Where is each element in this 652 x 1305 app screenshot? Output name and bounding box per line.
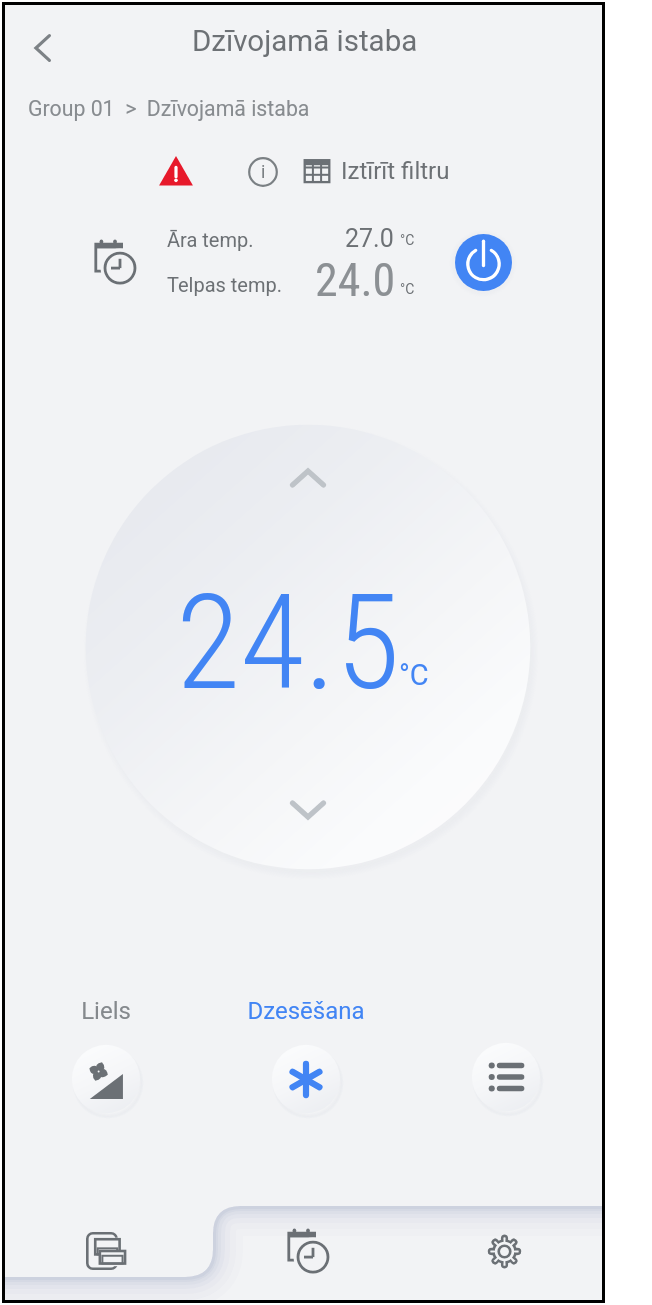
button[interactable]: More options [406, 997, 602, 1113]
staticText: Liels [81, 997, 131, 1025]
staticText: Āra temp. [167, 228, 254, 251]
staticText: °C [400, 281, 415, 297]
button[interactable]: Information [248, 157, 278, 187]
staticText: 24.0 [315, 253, 396, 307]
staticText: °C [399, 658, 429, 692]
staticText: Group 01 > Dzīvojamā istaba [28, 96, 310, 121]
button[interactable]: Warning [158, 153, 194, 189]
button[interactable]: Back [17, 21, 71, 75]
button[interactable]: Iztīrīt filtru [302, 156, 450, 186]
staticText: Dzesēšana [247, 997, 365, 1025]
button[interactable]: Settings [406, 1204, 602, 1300]
staticText: i [261, 161, 266, 182]
staticText: °C [400, 232, 415, 248]
button[interactable]: Schedule [87, 234, 143, 290]
button[interactable]: Mode [206, 997, 406, 1115]
staticText: Telpas temp. [167, 273, 283, 296]
button[interactable]: Devices [5, 1204, 208, 1300]
staticText: Iztīrīt filtru [341, 157, 450, 185]
staticText: Dzīvojamā istaba [192, 24, 418, 59]
button[interactable]: Fan speed [6, 997, 206, 1115]
button[interactable]: Decrease temperature [263, 765, 353, 855]
button[interactable]: Power [455, 234, 512, 291]
staticText: 24.5 [176, 566, 400, 721]
staticText: 27.0 [345, 224, 394, 253]
button[interactable]: Increase temperature [263, 433, 353, 523]
button[interactable]: Schedule [210, 1204, 406, 1300]
